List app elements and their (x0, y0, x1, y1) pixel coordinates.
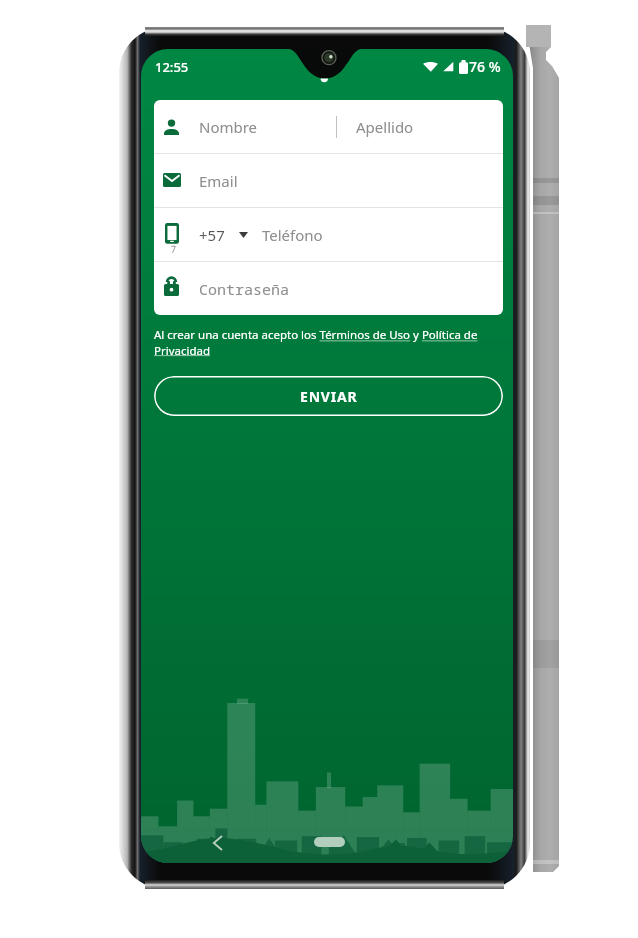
staticText: ENVIAR (300, 387, 358, 406)
staticText: Apellido (356, 117, 414, 137)
button[interactable]: Email (154, 154, 503, 207)
staticText: Nombre (199, 117, 258, 137)
staticText: 76 % (469, 57, 501, 76)
staticText: +57 (199, 225, 225, 245)
staticText: Contraseña (199, 279, 290, 299)
button[interactable]: +57 (154, 208, 503, 261)
staticText: Email (199, 171, 238, 191)
staticText: 12:55 (155, 58, 189, 76)
staticText: Teléfono (262, 225, 323, 245)
button[interactable]: Contraseña (154, 262, 503, 315)
button[interactable]: Nombre (154, 100, 503, 153)
button[interactable]: ENVIAR (154, 376, 503, 416)
button[interactable]: Back (204, 830, 230, 856)
button[interactable]: Home (314, 837, 345, 847)
staticText: Al crear una cuenta acepto los Términos … (154, 327, 503, 358)
